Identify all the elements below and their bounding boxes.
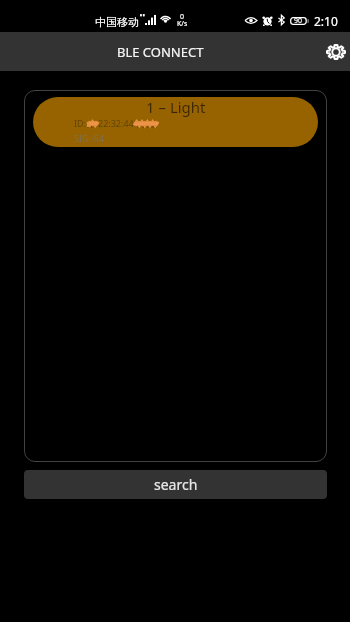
staticText: 0 [180,12,185,22]
staticText: ID: [74,117,87,129]
staticText: 90 [294,16,303,26]
staticText: AB [87,119,98,128]
staticText: search [154,475,198,494]
staticText: 1 – Light [146,97,206,117]
button[interactable]: Settings [324,40,347,63]
button[interactable]: 1 – Light [33,97,318,147]
staticText: K/s [177,19,188,29]
staticText: 55:66:77 [134,119,158,128]
button[interactable]: search [24,470,327,499]
staticText: 2:10 [314,13,338,29]
staticText: 中国移动 [95,15,139,29]
staticText: BLE CONNECT [117,43,204,61]
staticText: 22:32:44 [98,117,134,129]
staticText: SIG:-54 [74,132,105,144]
